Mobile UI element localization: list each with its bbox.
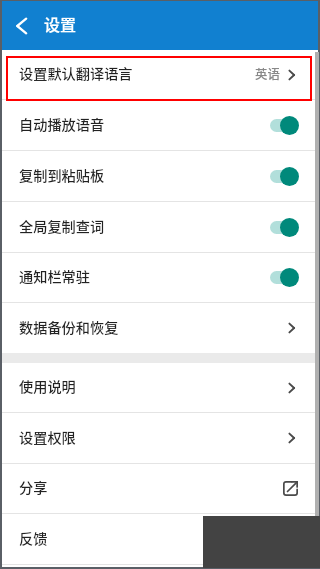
staticText: 设置权限 [19,427,76,448]
staticText: 分享 [19,477,48,498]
button[interactable]: 使用说明 [2,363,318,412]
button[interactable]: 自动播放语音 [2,100,318,150]
button[interactable]: 复制到粘贴板 [2,151,318,201]
button[interactable]: 设置默认翻译语言 [2,50,318,99]
button[interactable]: 全局复制查词 [2,202,318,252]
button[interactable]: 分享 [2,464,318,513]
button[interactable]: 设置权限 [2,413,318,463]
button[interactable]: 通知栏常驻 [2,253,318,302]
staticText: 复制到粘贴板 [19,165,105,186]
button[interactable]: Back [2,1,40,50]
staticText: 设置默认翻译语言 [19,63,133,84]
button[interactable]: 数据备份和恢复 [2,303,318,353]
staticText: 通知栏常驻 [19,266,90,287]
staticText: 反馈 [19,528,48,549]
staticText: 设置 [44,12,77,35]
staticText: 自动播放语音 [19,114,105,135]
staticText: 全局复制查词 [19,216,105,237]
button[interactable]: 反馈 [2,514,318,564]
staticText: 数据备份和恢复 [19,317,119,338]
staticText: 使用说明 [19,376,76,397]
staticText: 英语 [255,65,280,83]
